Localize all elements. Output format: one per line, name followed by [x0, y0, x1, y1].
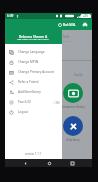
button[interactable]: Recents	[69, 160, 75, 166]
staticText: Change Primary Account	[18, 70, 54, 74]
button[interactable]: Print	[81, 21, 89, 29]
staticText: Transaction History	[61, 105, 85, 109]
button[interactable]: Add Beneficiary	[5, 87, 62, 97]
staticText: Add Beneficiary	[18, 90, 41, 94]
staticText: 24%	[83, 14, 89, 18]
button[interactable]: Balance	[56, 21, 78, 28]
button[interactable]: Rebecca Sharon A	[5, 30, 62, 44]
staticText: Top Up	[74, 73, 83, 77]
staticText: Bal:N/A	[63, 22, 76, 27]
staticText: Rebecca Sharon A	[19, 34, 48, 38]
staticText: Logout	[18, 110, 29, 114]
button[interactable]: Help Setup	[56, 116, 90, 142]
button[interactable]: Back	[22, 160, 28, 166]
staticText: version 1.1.1	[25, 152, 42, 156]
button[interactable]: Change Language	[5, 47, 62, 57]
staticText: Help Setup	[66, 138, 80, 142]
button[interactable]: Touch ID	[5, 97, 62, 107]
staticText: Last Login: 07 Mar 2019 03:41	[17, 38, 50, 41]
staticText: 6:09	[7, 14, 14, 18]
button[interactable]: Home	[46, 160, 52, 166]
button[interactable]: Logout	[5, 107, 62, 117]
button[interactable]: Change Primary Account	[5, 67, 62, 77]
staticText: Refer a Friend	[18, 80, 39, 84]
staticText: N/A	[63, 34, 70, 39]
staticText: Change Language	[18, 50, 45, 54]
staticText: Change MPIN	[18, 60, 39, 64]
button[interactable]: Change MPIN	[5, 57, 62, 67]
staticText: ary acc	[63, 39, 71, 42]
staticText: Touch ID	[18, 100, 31, 104]
button[interactable]: Transaction History	[56, 83, 90, 109]
button[interactable]: Refer a Friend	[5, 77, 62, 87]
